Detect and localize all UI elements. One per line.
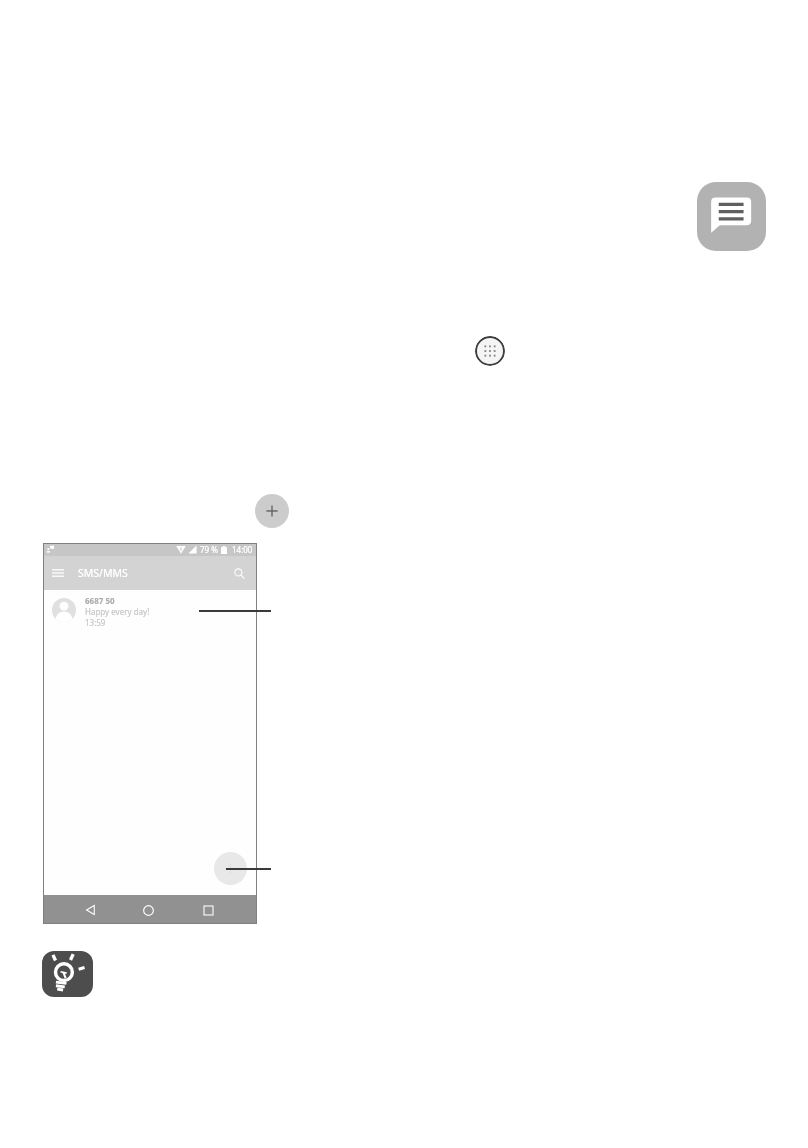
button[interactable]: 6687 50 <box>43 590 257 632</box>
staticText: Happy every day! <box>85 606 150 617</box>
staticText: 79 % <box>200 544 218 555</box>
button[interactable]: Create new message <box>255 494 289 528</box>
button[interactable]: Search <box>227 561 251 585</box>
button[interactable]: Recents <box>195 897 221 923</box>
staticText: 6687 50 <box>85 595 115 606</box>
button[interactable]: New conversation <box>214 852 247 885</box>
staticText: SMS/MMS <box>78 566 128 580</box>
button[interactable]: Back <box>77 897 103 923</box>
button[interactable]: Home <box>135 897 161 923</box>
button[interactable]: Menu <box>47 562 69 584</box>
button[interactable]: Messages app <box>697 182 766 251</box>
button[interactable]: Tip <box>42 951 93 997</box>
button[interactable]: App drawer <box>475 336 505 366</box>
staticText: 13:59 <box>85 617 106 628</box>
staticText: 14:00 <box>232 544 253 555</box>
